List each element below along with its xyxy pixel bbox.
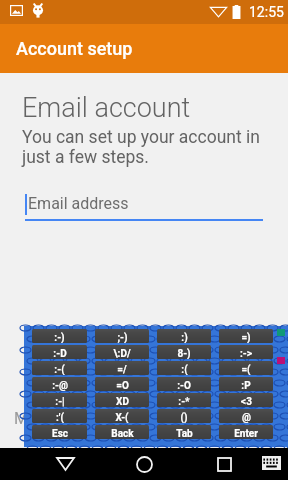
button[interactable]: XD	[95, 393, 149, 407]
staticText: \:D/	[113, 348, 131, 359]
button[interactable]: Manual setup	[14, 409, 111, 428]
other: Screenshot	[10, 5, 23, 16]
button[interactable]: Recent apps	[200, 448, 248, 480]
staticText: =(	[241, 364, 251, 375]
staticText: :->	[240, 348, 252, 359]
staticText: ;-)	[117, 332, 128, 343]
button[interactable]: :(	[157, 361, 211, 375]
staticText: XD	[116, 396, 129, 407]
staticText: :)	[181, 332, 188, 343]
staticText: :-(	[54, 364, 65, 375]
staticText: Esc	[52, 428, 68, 439]
button[interactable]: =(	[219, 361, 273, 375]
staticText: Enter	[234, 428, 258, 439]
staticText: =)	[241, 332, 251, 343]
staticText: :-D	[53, 348, 67, 359]
button[interactable]: :->	[219, 345, 273, 359]
staticText: :-@	[52, 380, 68, 391]
staticText: 12:55	[249, 4, 284, 20]
button[interactable]: Tab	[157, 425, 211, 439]
button[interactable]: :-@	[32, 377, 87, 391]
staticText: You can set up your account in just a fe…	[22, 127, 260, 167]
staticText: Tab	[176, 428, 193, 439]
button[interactable]: :P	[219, 377, 273, 391]
other: Debug	[32, 4, 44, 19]
button[interactable]: :-D	[32, 345, 87, 359]
button[interactable]: :-(	[32, 361, 87, 375]
staticText: :(	[181, 364, 188, 375]
button[interactable]: <3	[219, 393, 273, 407]
staticText: Email account	[22, 92, 191, 124]
button[interactable]: :-|	[32, 393, 87, 407]
button[interactable]: =O	[95, 377, 149, 391]
button[interactable]: :)	[157, 329, 211, 343]
button[interactable]: =)	[219, 329, 273, 343]
button[interactable]: Back	[41, 448, 89, 480]
staticText: Email address	[28, 194, 129, 213]
staticText: :'(	[56, 412, 64, 423]
staticText: 8-)	[177, 348, 191, 359]
staticText: :-*	[178, 396, 190, 407]
button[interactable]: Switch keyboard	[262, 456, 281, 470]
button[interactable]: :-O	[157, 377, 211, 391]
button[interactable]: X-(	[95, 409, 149, 423]
staticText: :-|	[55, 396, 65, 407]
button[interactable]: ;-)	[95, 329, 149, 343]
staticText: :-)	[54, 332, 65, 343]
staticText: @	[242, 412, 251, 423]
button[interactable]: =/	[95, 361, 149, 375]
button[interactable]: :-)	[32, 329, 87, 343]
button[interactable]: @	[219, 409, 273, 423]
staticText: :-O	[177, 380, 191, 391]
button[interactable]: \:D/	[95, 345, 149, 359]
button[interactable]: Back	[95, 425, 149, 439]
staticText: =/	[117, 364, 127, 375]
staticText: <3	[241, 396, 252, 407]
button[interactable]: :'(	[32, 409, 87, 423]
staticText: Account setup	[16, 38, 133, 59]
staticText: Back	[111, 428, 134, 439]
staticText: X-(	[115, 412, 129, 423]
button[interactable]: Esc	[32, 425, 87, 439]
staticText: :P	[241, 380, 251, 391]
button[interactable]: ()	[157, 409, 211, 423]
staticText: ()	[180, 412, 188, 423]
button[interactable]: :-*	[157, 393, 211, 407]
button[interactable]: 8-)	[157, 345, 211, 359]
staticText: =O	[116, 380, 129, 391]
button[interactable]: Enter	[219, 425, 273, 439]
button[interactable]: Home	[120, 448, 168, 480]
